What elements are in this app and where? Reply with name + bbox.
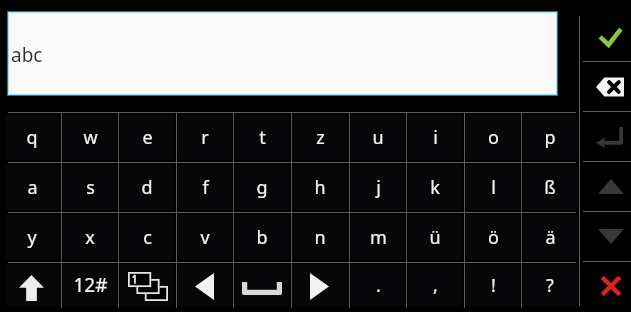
staticText: k [430,175,440,200]
button[interactable]: c [118,212,176,262]
button[interactable]: r [176,112,234,162]
button[interactable]: a [3,162,61,212]
staticText: r [201,125,209,150]
button[interactable]: 12# [61,262,119,308]
staticText: i [433,125,438,150]
staticText: l [491,175,496,200]
button[interactable]: t [233,112,291,162]
button[interactable]: w [61,112,119,162]
staticText: g [256,175,268,200]
button[interactable]: n [291,212,349,262]
staticText: s [86,175,95,200]
button[interactable]: q [3,112,61,162]
staticText: b [256,225,268,250]
staticText: h [314,175,326,200]
button[interactable]: y [3,212,61,262]
staticText: q [26,125,38,150]
staticText: abc [11,42,43,68]
staticText: d [141,175,153,200]
button[interactable]: Backspace [580,61,631,111]
button[interactable]: f [176,162,234,212]
button[interactable]: Cursor left [176,262,234,308]
button[interactable]: x [61,212,119,262]
button[interactable]: b [233,212,291,262]
button[interactable]: z [291,112,349,162]
staticText: z [316,125,325,150]
staticText: j [376,175,381,200]
staticText: ! [491,273,496,298]
button[interactable]: . [349,262,407,308]
button[interactable]: l [464,162,522,212]
staticText: y [27,225,37,250]
button[interactable]: o [464,112,522,162]
button[interactable]: g [233,162,291,212]
button[interactable]: p [521,112,579,162]
button[interactable]: Switch keyboard [118,262,176,308]
button[interactable]: ! [464,262,522,308]
button[interactable]: v [176,212,234,262]
staticText: ß [544,175,556,200]
staticText: ö [488,225,499,250]
staticText: t [259,125,266,150]
button[interactable]: ä [521,212,579,262]
staticText: f [202,175,209,200]
staticText: e [142,125,153,150]
button[interactable]: , [406,262,464,308]
button[interactable]: Accept [580,0,631,61]
button[interactable]: m [349,212,407,262]
staticText: 12# [73,272,108,298]
staticText: x [85,225,95,250]
staticText: w [83,125,98,150]
button[interactable]: ö [464,212,522,262]
staticText: n [314,225,326,250]
staticText: u [372,125,384,150]
button[interactable]: ß [521,162,579,212]
staticText: . [376,273,381,298]
button[interactable]: e [118,112,176,162]
button[interactable]: Close [580,261,631,312]
staticText: c [143,225,152,250]
button[interactable]: Space [233,262,291,308]
staticText: ü [429,225,441,250]
button[interactable]: k [406,162,464,212]
button[interactable]: Move up [580,161,631,211]
staticText: o [488,125,499,150]
staticText: ? [546,273,554,298]
button[interactable]: d [118,162,176,212]
button[interactable]: Shift [3,262,61,308]
button[interactable]: Cursor right [291,262,349,308]
button[interactable]: u [349,112,407,162]
staticText: p [544,125,556,150]
button[interactable]: i [406,112,464,162]
staticText: m [370,225,387,250]
staticText: a [27,175,38,200]
staticText: , [433,273,438,298]
staticText: v [200,225,210,250]
button[interactable]: Enter [580,111,631,161]
staticText: ä [545,225,556,250]
button[interactable]: ? [521,262,579,308]
button[interactable]: abc [9,13,556,94]
button[interactable]: Move down [580,211,631,261]
button[interactable]: s [61,162,119,212]
button[interactable]: h [291,162,349,212]
button[interactable]: j [349,162,407,212]
button[interactable]: ü [406,212,464,262]
